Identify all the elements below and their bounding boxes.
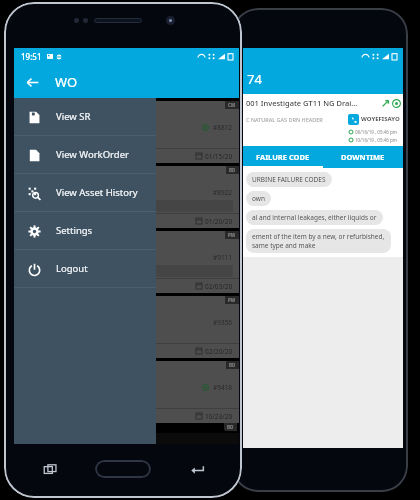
staticText: FAILURE CODE [256, 152, 310, 162]
staticText: BD [227, 424, 234, 430]
staticText: own [252, 194, 265, 203]
staticText: URBINE FAILURE CODES [252, 175, 326, 184]
staticText: CM [228, 102, 236, 108]
staticText: PM [228, 297, 236, 303]
staticText: 02/03/20 [205, 282, 233, 291]
staticText: …rrecti… [18, 108, 52, 119]
staticText: View Asset History [56, 186, 138, 199]
button[interactable]: Call [348, 114, 359, 125]
staticText: #8812 [213, 123, 233, 132]
staticText: BD [229, 167, 236, 173]
staticText: #9111 [213, 253, 233, 262]
staticText: Settings [56, 224, 93, 237]
staticText: 10/23/20 [205, 412, 233, 421]
button[interactable]: View Asset History [14, 174, 156, 211]
staticText: ement of the item by a new, or refurbish… [252, 232, 385, 250]
staticText: WO [55, 73, 78, 91]
button[interactable]: Logout [14, 250, 156, 287]
staticText: 01/20/20 [205, 217, 233, 226]
staticText: 10/16/19 , 05:46 pm [355, 137, 397, 143]
button[interactable]: View WorkOrder [14, 136, 156, 173]
button[interactable]: View SR [14, 98, 156, 135]
staticText: 01/15/20 [205, 152, 233, 161]
staticText: 001 Investigate GT11 NG Drai… [246, 98, 381, 108]
staticText: #8922 [213, 188, 233, 197]
staticText: al and internal leakages, either liquids… [252, 213, 377, 222]
staticText: DOWNTIME [341, 152, 385, 162]
staticText: …ibrati… [18, 173, 52, 184]
button[interactable]: Back [186, 458, 208, 480]
staticText: Logout [56, 262, 88, 275]
staticText: #9418 [213, 383, 233, 392]
button[interactable]: URBINE FAILURE CODES [246, 172, 332, 187]
staticText: 74 [247, 70, 262, 88]
button[interactable]: Home [95, 460, 151, 478]
button[interactable]: Recents [39, 458, 61, 480]
other: Open [381, 99, 390, 108]
staticText: PM [228, 232, 236, 238]
button[interactable]: Back [22, 72, 42, 92]
button[interactable]: Settings [14, 212, 156, 249]
staticText: #9356 [213, 318, 233, 327]
staticText: C NATURAL GAS DRN HEADER [246, 116, 323, 123]
staticText: 02/20/20 [205, 347, 233, 356]
other: Status [392, 99, 401, 108]
staticText: 08/16/19 , 05:46 pm [355, 129, 397, 135]
button[interactable]: ement of the item by a new, or refurbish… [246, 229, 391, 253]
staticText: WOYEFISAYO [361, 115, 400, 123]
button[interactable]: al and internal leakages, either liquids… [246, 210, 383, 225]
staticText: 19:51 [21, 51, 42, 62]
staticText: BD [229, 362, 236, 368]
staticText: View SR [56, 110, 91, 123]
button[interactable]: own [246, 191, 271, 206]
button[interactable]: DOWNTIME [323, 146, 403, 168]
staticText: View WorkOrder [56, 148, 129, 161]
staticText: C DCS Server Room [19, 266, 83, 276]
button[interactable]: FAILURE CODE [243, 146, 323, 168]
